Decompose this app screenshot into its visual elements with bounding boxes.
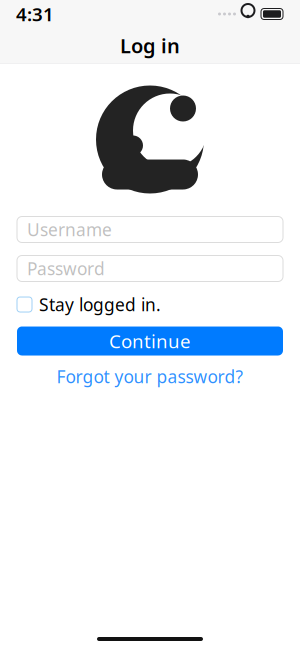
staticText: 4:31 [16,2,54,26]
button[interactable]: Forgot your password? [17,366,283,386]
staticText: Log in [120,32,180,59]
staticText: Stay logged in. [39,293,161,316]
staticText: Forgot your password? [56,365,243,388]
button[interactable]: Continue [17,326,283,355]
staticText: Username [27,218,112,241]
button[interactable]: Stay logged in. [17,293,283,315]
staticText: Password [27,257,105,280]
staticText: Continue [109,329,191,353]
